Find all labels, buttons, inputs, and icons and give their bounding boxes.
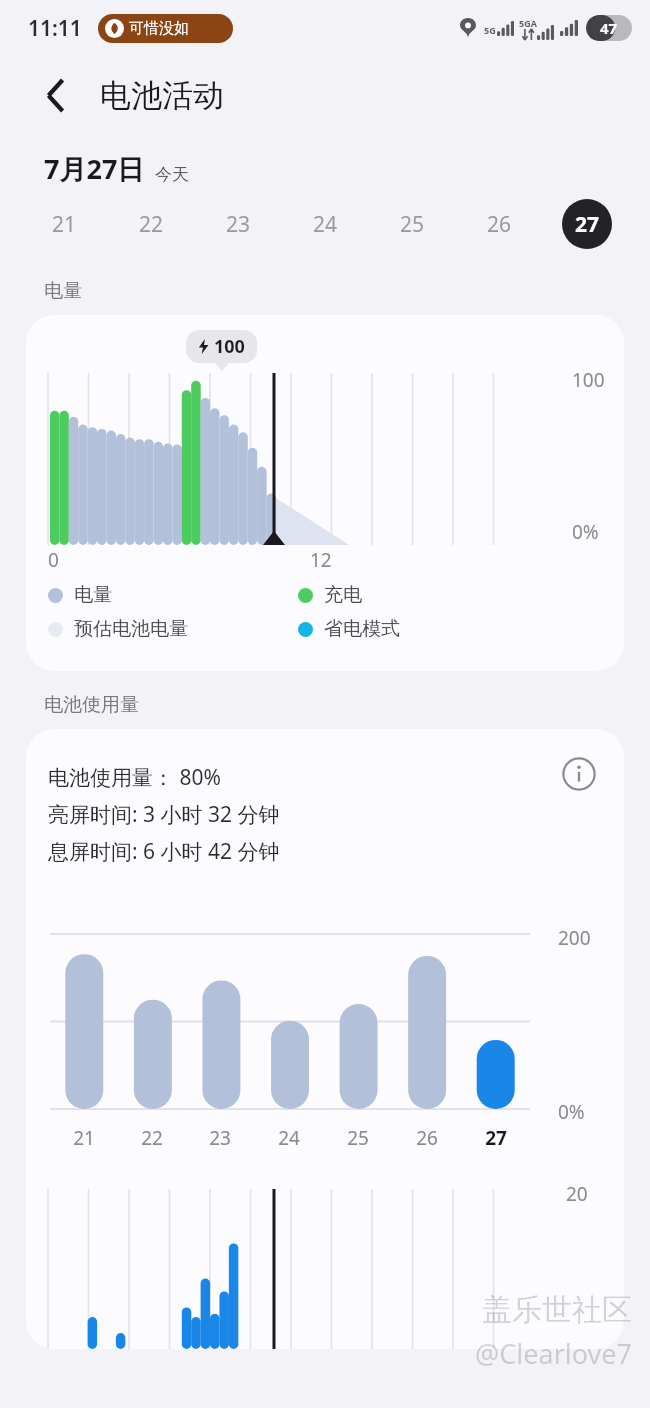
staticText: 25 (347, 1125, 369, 1151)
staticText: 盖乐世社区 (482, 1291, 632, 1329)
staticText: 47 (600, 18, 618, 38)
staticText: 5GA (519, 17, 537, 29)
staticText: 0% (572, 519, 599, 545)
staticText: 21 (73, 1125, 95, 1151)
staticText: 22 (141, 1125, 163, 1151)
button[interactable]: 25 (369, 193, 456, 255)
staticText: 100 (572, 367, 605, 393)
staticText: 22 (139, 210, 164, 239)
staticText: 电池活动 (100, 76, 224, 115)
staticText: 27 (575, 210, 600, 239)
staticText: 今天 (155, 164, 189, 185)
staticText: 电池使用量： 80% (48, 763, 221, 792)
staticText: 23 (226, 210, 251, 239)
button[interactable]: 24 (282, 193, 369, 255)
button[interactable]: 100 (26, 315, 624, 671)
staticText: 100 (214, 334, 245, 359)
staticText: 可惜没如 (129, 19, 189, 38)
staticText: 5G (484, 24, 496, 36)
staticText: 充电 (324, 583, 362, 607)
staticText: 亮屏时间: 3 小时 32 分钟 (48, 800, 280, 829)
staticText: 24 (278, 1125, 300, 1151)
staticText: 21 (52, 210, 77, 239)
button[interactable]: 26 (456, 193, 543, 255)
button[interactable]: Back (34, 73, 78, 117)
staticText: 0 (48, 547, 59, 573)
button[interactable]: Info (556, 751, 602, 797)
staticText: 200 (558, 925, 591, 951)
staticText: @Clearlove7 (475, 1335, 632, 1372)
staticText: 12 (310, 547, 332, 573)
button[interactable]: 22 (108, 193, 195, 255)
staticText: 预估电池电量 (74, 617, 188, 641)
staticText: 7月27日 (44, 150, 145, 187)
staticText: 26 (416, 1125, 438, 1151)
button[interactable]: 21 (20, 193, 108, 255)
staticText: 11:11 (28, 14, 82, 43)
button[interactable]: 电池使用量： 80% (26, 729, 624, 1349)
staticText: 25 (400, 210, 425, 239)
staticText: 26 (487, 210, 512, 239)
staticText: 电量 (74, 583, 112, 607)
staticText: 0% (558, 1099, 585, 1125)
button[interactable]: 27 (543, 193, 630, 255)
staticText: 24 (313, 210, 338, 239)
staticText: 23 (209, 1125, 231, 1151)
button[interactable]: 23 (195, 193, 282, 255)
staticText: 20 (566, 1181, 588, 1207)
staticText: 省电模式 (324, 617, 400, 641)
staticText: 27 (485, 1125, 507, 1151)
staticText: 息屏时间: 6 小时 42 分钟 (48, 837, 280, 866)
staticText: 电池使用量 (44, 693, 139, 717)
staticText: 电量 (44, 279, 82, 303)
